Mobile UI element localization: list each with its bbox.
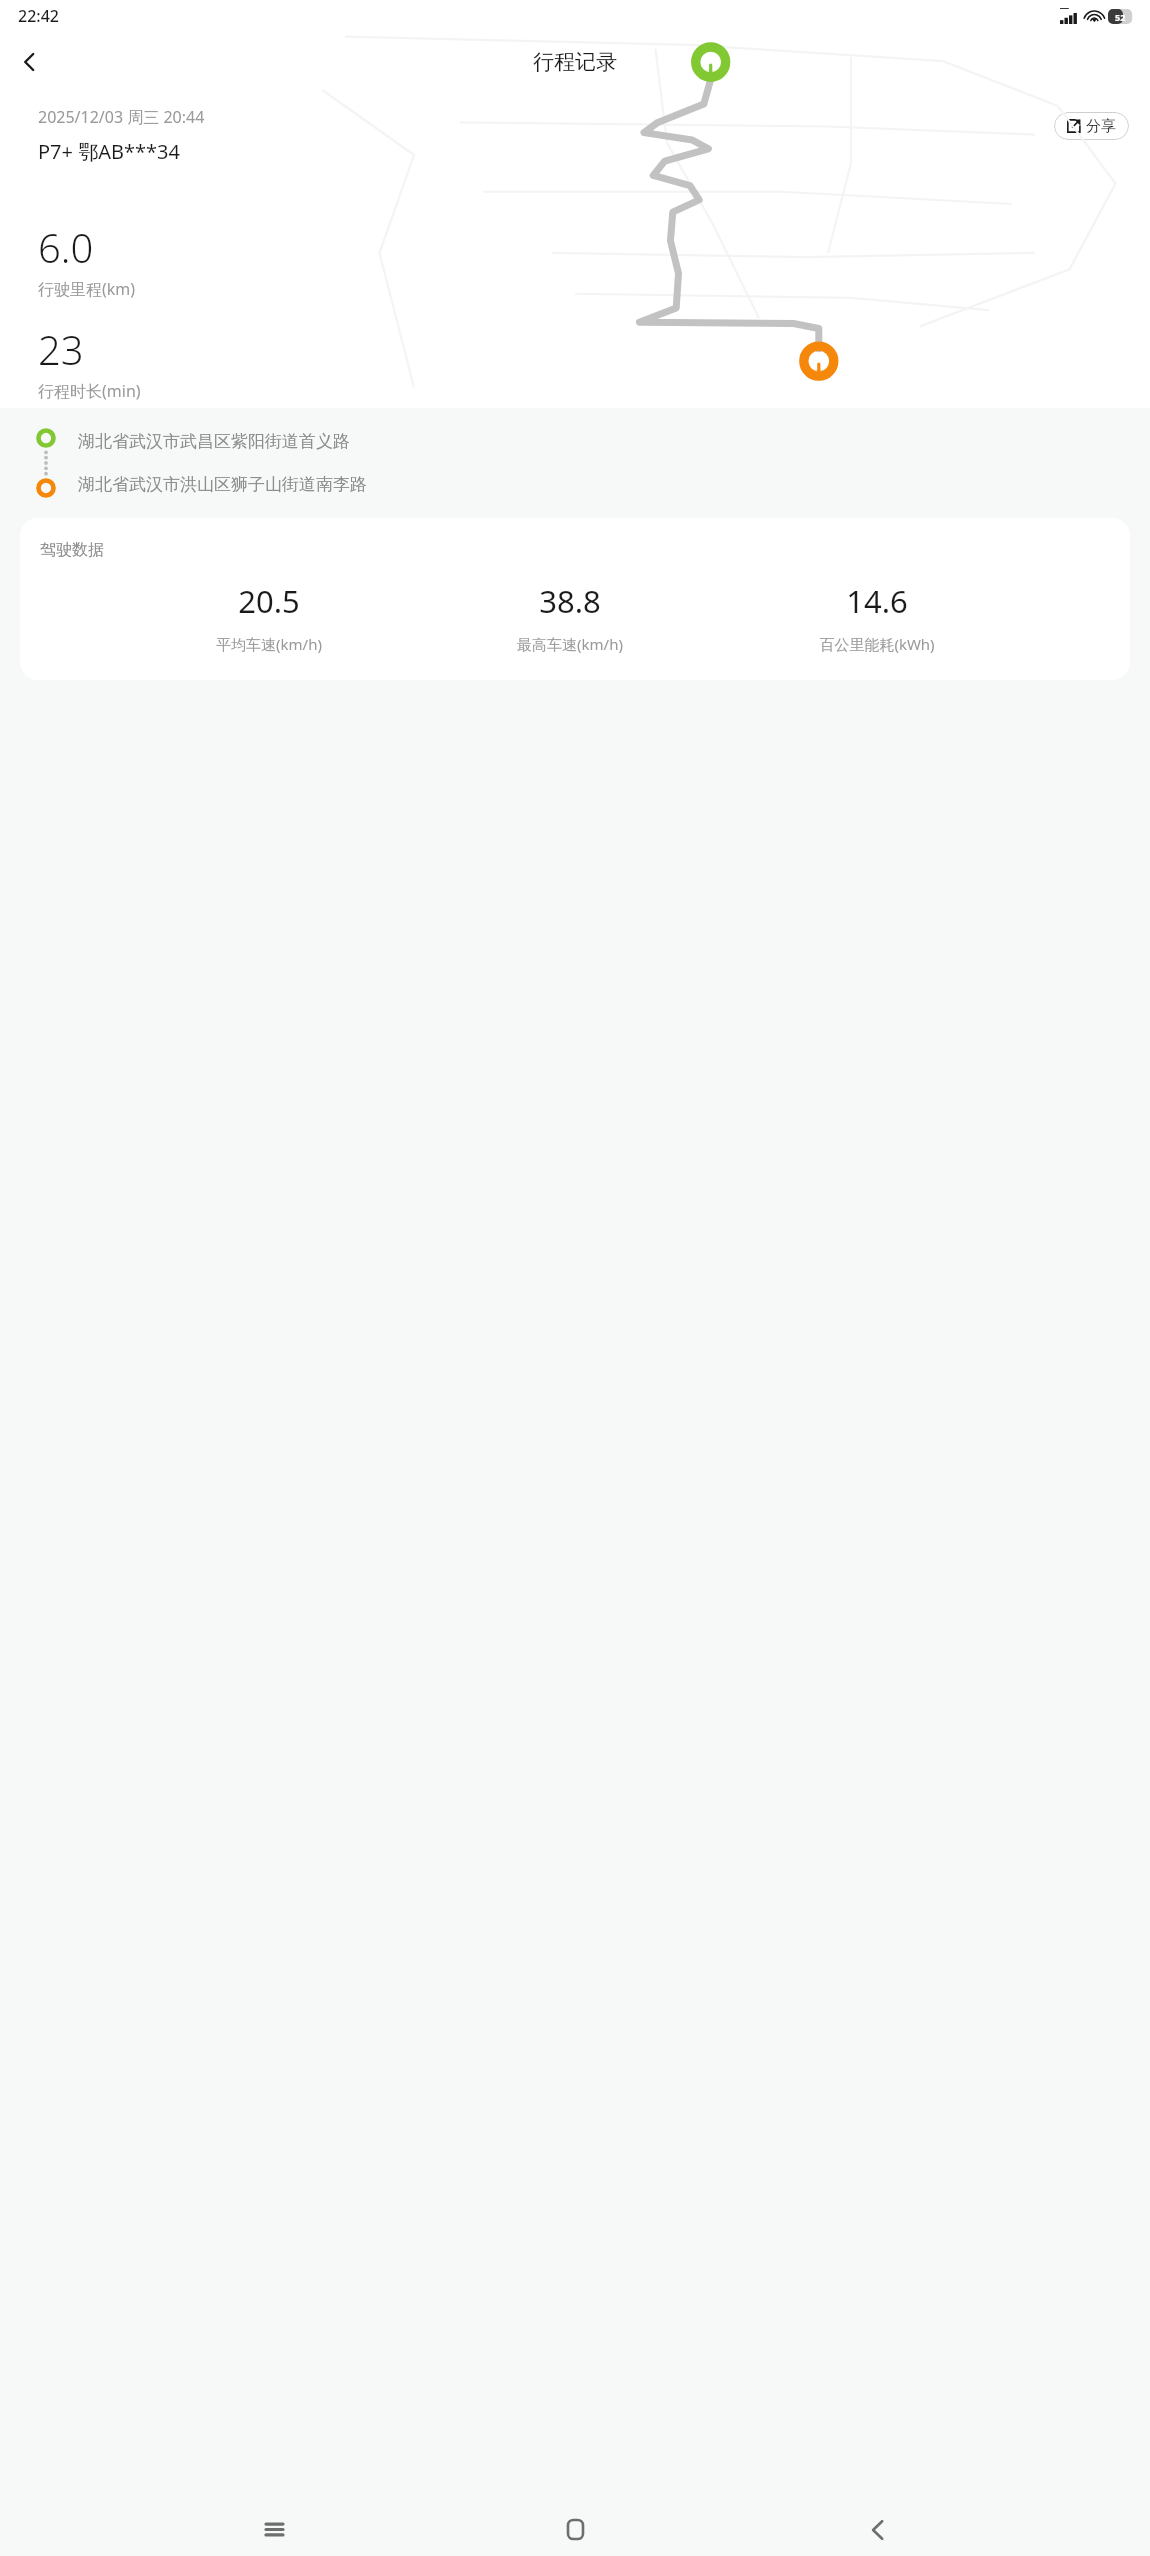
staticText: 湖北省武汉市洪山区狮子山街道南李路	[78, 474, 367, 495]
staticText: 20.5	[238, 580, 300, 622]
staticText: 最高车速(km/h)	[517, 634, 623, 654]
staticText: 14.6	[846, 580, 908, 622]
button[interactable]: 分享	[1054, 112, 1129, 140]
staticText: 驾驶数据	[40, 540, 104, 560]
staticText: 行驶里程(km)	[38, 278, 136, 300]
button[interactable]: Recent apps	[246, 2503, 302, 2556]
button[interactable]: Home	[547, 2503, 603, 2556]
button[interactable]: Back	[6, 38, 54, 86]
staticText: P7+ 鄂AB***34	[38, 138, 180, 165]
staticText: 23	[38, 322, 84, 376]
staticText: 行程时长(min)	[38, 380, 141, 402]
staticText: 百公里能耗(kWh)	[819, 634, 935, 654]
staticText: 行程记录	[533, 49, 617, 75]
staticText: 湖北省武汉市武昌区紫阳街道首义路	[78, 431, 350, 452]
staticText: 平均车速(km/h)	[216, 634, 322, 654]
button[interactable]: Back	[849, 2503, 905, 2556]
staticText: 分享	[1086, 117, 1116, 136]
staticText: 2025/12/03 周三 20:44	[38, 106, 205, 128]
staticText: 52	[1115, 11, 1126, 23]
staticText: 22:42	[18, 5, 59, 27]
staticText: 6.0	[38, 220, 94, 274]
staticText: 38.8	[539, 580, 601, 622]
button[interactable]: 驾驶数据	[20, 518, 1130, 680]
